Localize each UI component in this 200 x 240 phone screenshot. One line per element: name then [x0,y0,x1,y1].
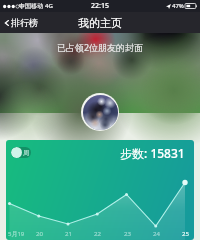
button[interactable]: Profile avatar [81,93,119,131]
staticText: 我的主页 [78,16,122,30]
staticText: 步数: 15831 [120,145,185,161]
button[interactable]: 周 [11,147,31,158]
staticText: 22:15 [91,1,109,11]
staticText: 周 [23,149,29,157]
staticText: 23 [124,230,131,238]
staticText: 24 [153,230,160,238]
staticText: 47% [172,2,184,10]
staticText: 21 [65,230,72,238]
staticText: 4G [45,2,53,10]
staticText: 中国移动 [19,2,43,10]
staticText: 5月19 [8,230,25,238]
button[interactable]: 排行榜 [3,17,38,28]
staticText: 已占领2位朋友的封面 [0,41,200,53]
staticText: 22 [94,230,101,238]
staticText: 排行榜 [11,17,38,28]
staticText: 20 [36,230,43,238]
staticText: 25 [182,230,189,238]
